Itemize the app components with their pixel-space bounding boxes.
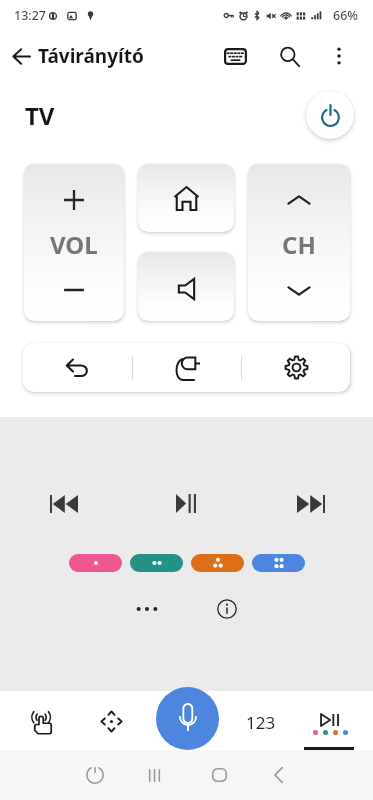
button[interactable]: Settings (242, 343, 350, 392)
button[interactable]: Play Pause (166, 483, 207, 524)
button[interactable]: Previous (43, 483, 84, 524)
button[interactable]: Colour key 2 (130, 554, 183, 572)
button[interactable]: Mute (138, 252, 234, 321)
button[interactable]: D-pad (91, 701, 132, 742)
button[interactable]: Touchpad (22, 701, 63, 742)
button[interactable]: Home (138, 164, 234, 232)
button[interactable]: Back (23, 343, 132, 392)
button[interactable]: Channel (248, 164, 350, 321)
button[interactable]: Home (199, 755, 239, 795)
button[interactable]: Next (290, 483, 331, 524)
staticText: Távirányító (38, 43, 144, 69)
button[interactable]: Back (258, 755, 298, 795)
button[interactable]: Search (267, 34, 311, 78)
button[interactable]: Volume (24, 164, 124, 321)
staticText: 66% (333, 7, 358, 24)
button[interactable]: Colour key 1 (69, 554, 122, 572)
button[interactable]: Keyboard (213, 34, 257, 78)
button[interactable]: More (130, 592, 164, 626)
button[interactable]: Back (0, 35, 42, 77)
staticText: VOL (50, 228, 98, 261)
button[interactable]: Colour key 3 (191, 554, 244, 572)
staticText: TV (25, 99, 55, 132)
staticText: CH (282, 228, 316, 261)
button[interactable]: Power menu (75, 755, 115, 795)
button[interactable]: Power (306, 91, 354, 139)
staticText: 123 (246, 711, 276, 734)
button[interactable]: Numbers (240, 701, 282, 743)
staticText: 13:27 (14, 7, 47, 24)
button[interactable]: Media keys (309, 703, 351, 745)
button[interactable]: Voice search (156, 687, 219, 750)
button[interactable]: Info (210, 592, 244, 626)
button[interactable]: Source (133, 343, 241, 392)
button[interactable]: More options (317, 34, 361, 78)
button[interactable]: Colour key 4 (252, 554, 305, 572)
button[interactable]: Recents (134, 755, 174, 795)
